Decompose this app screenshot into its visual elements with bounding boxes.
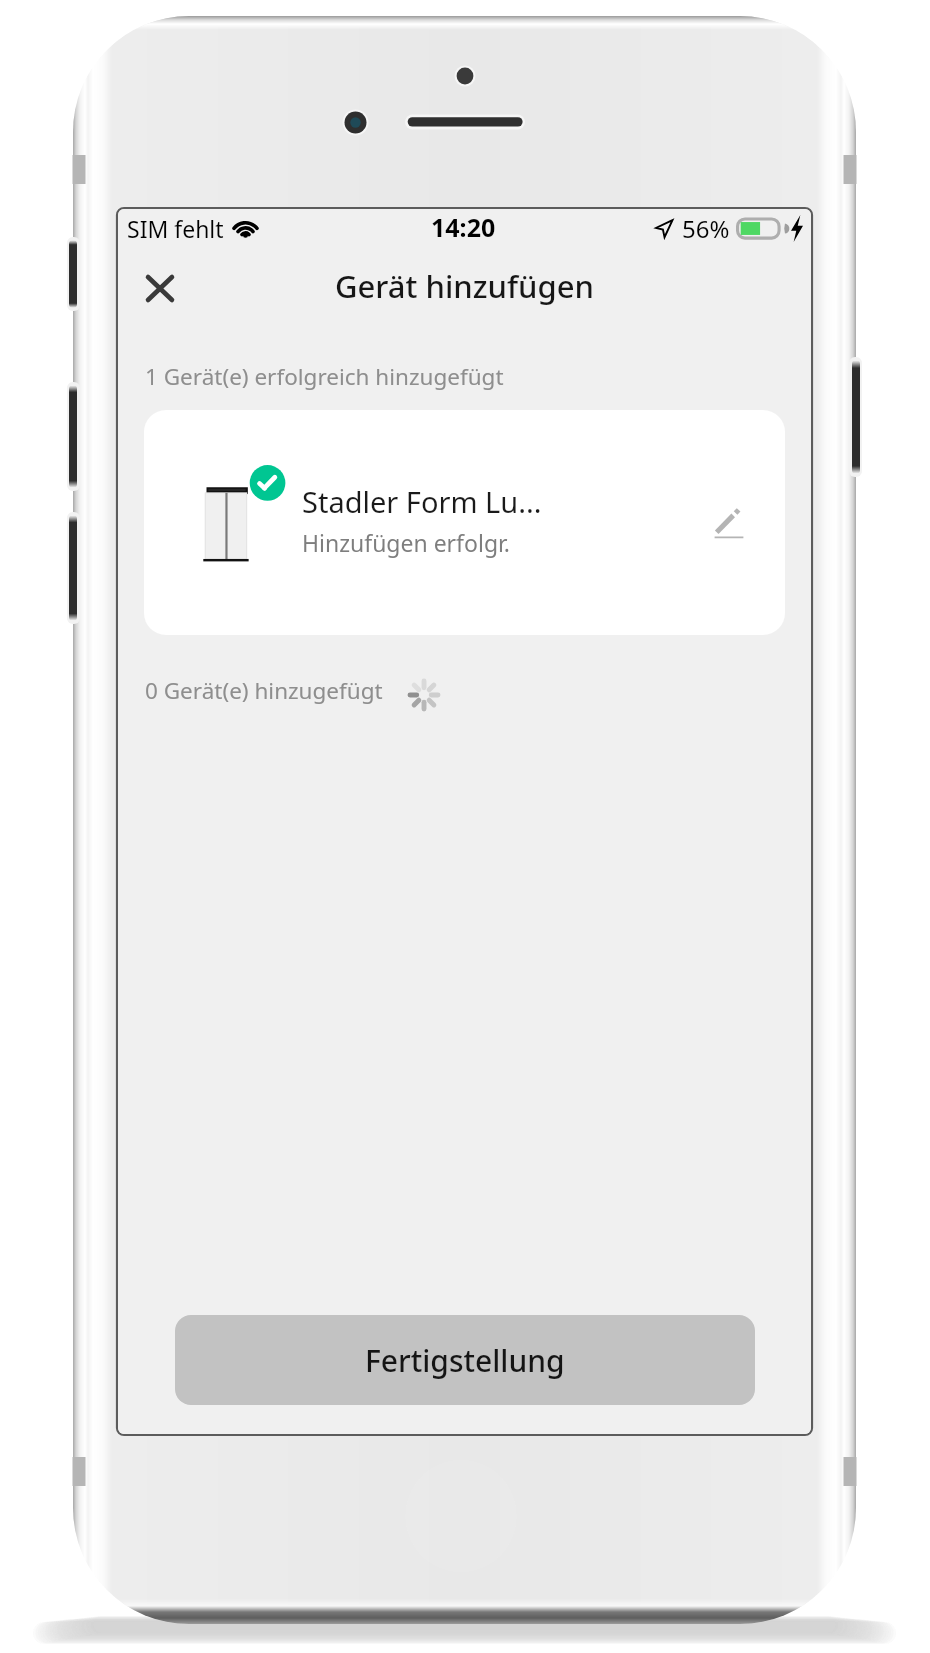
staticText: SIM fehlt [127,213,224,244]
button[interactable]: Stadler Form Lu... [144,410,785,635]
staticText: Gerät hinzufügen [335,265,594,307]
button[interactable]: Bearbeiten [697,491,761,555]
staticText: 0 Gerät(e) hinzugefügt [145,675,383,706]
staticText: 56% [682,212,730,245]
button[interactable]: Fertigstellung [175,1315,755,1405]
staticText: 1 Gerät(e) erfolgreich hinzugefügt [145,361,504,392]
button[interactable]: Schließen [130,259,190,319]
staticText: 14:20 [431,210,496,244]
staticText: Stadler Form Lu... [302,482,542,521]
staticText: Fertigstellung [365,1340,565,1381]
staticText: Hinzufügen erfolgr. [302,527,511,558]
